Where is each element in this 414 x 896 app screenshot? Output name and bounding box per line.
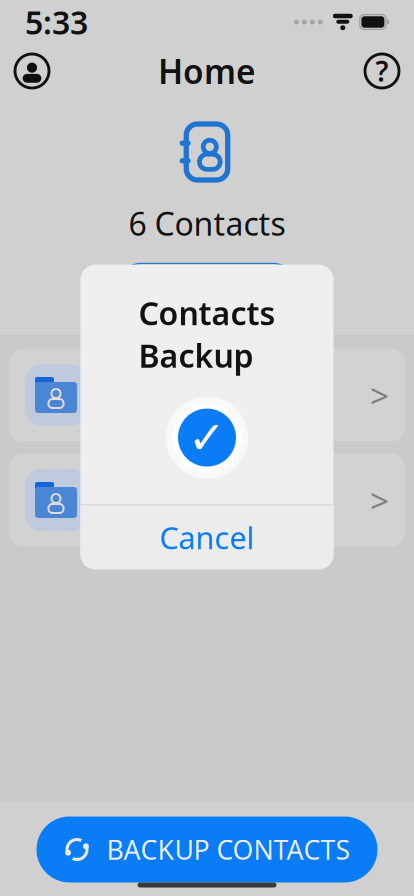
staticText: Cancel [159,517,254,558]
staticText: ? [375,52,388,90]
button[interactable]: 0709 [9,348,405,441]
staticText: 0709 [105,359,169,396]
button[interactable]: Help [359,48,405,94]
staticText: Refresh [173,269,273,307]
button[interactable]: Cancel [80,505,333,569]
staticText: 6 Contacts [128,202,285,244]
button[interactable]: Account [9,48,55,94]
staticText: 5:33 [25,1,88,43]
staticText: Contacts Backup [138,292,275,377]
staticText: Jul 8, 2022 [105,402,208,431]
button[interactable]: > [9,453,405,546]
button[interactable]: BACKUP CONTACTS [36,816,377,882]
staticText: Home [158,49,256,93]
staticText: > [370,478,389,522]
staticText: BACKUP CONTACTS [106,832,350,867]
staticText: > [370,373,389,417]
staticText: ✓ [188,412,226,463]
button[interactable]: Refresh [116,263,297,312]
